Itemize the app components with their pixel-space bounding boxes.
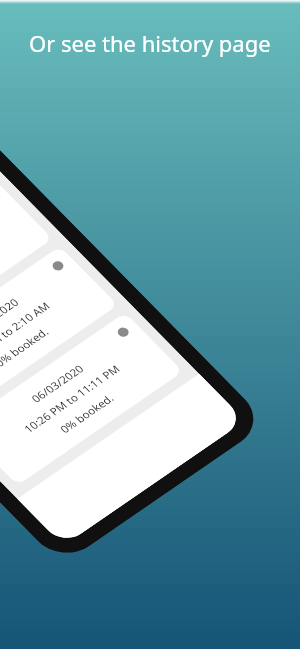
staticText: 1:22 AM to 2:10 AM [0,291,54,373]
staticText: 10:26 PM to 11:11 PM [19,353,124,444]
staticText: Or see the history page [29,28,271,58]
button[interactable]: 06/04/2020 [0,231,123,434]
button[interactable]: 06/05/2020 [0,165,58,367]
button[interactable]: 06/03/2020 [0,298,188,500]
staticText: 06/04/2020 [0,291,23,343]
staticText: 0% booked. [56,386,118,440]
staticText: 0% booked. [0,320,53,374]
staticText: 06/03/2020 [27,357,88,410]
